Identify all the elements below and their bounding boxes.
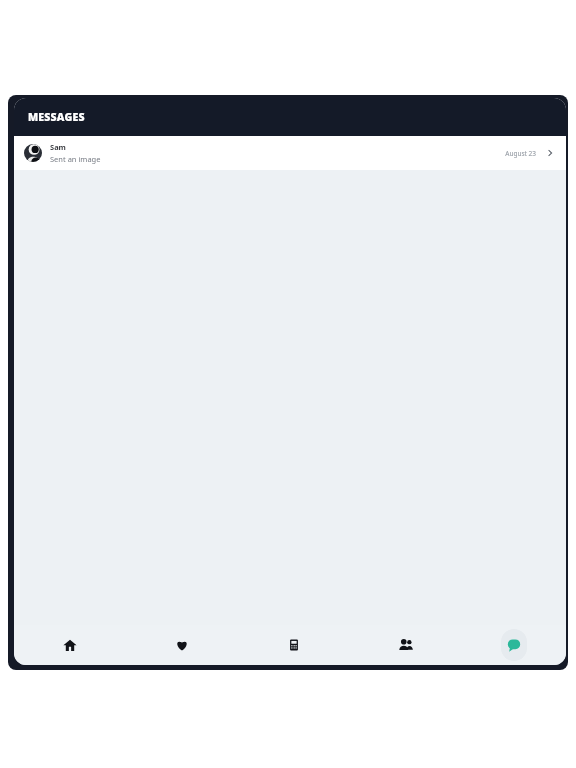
button[interactable]: Open conversation [544,147,556,159]
staticText: MESSAGES [28,110,85,124]
staticText: August 23 [505,149,536,158]
button[interactable]: Home [14,625,126,665]
button[interactable]: Calculator [238,625,350,665]
staticText: Sam [50,142,66,152]
button[interactable]: Friends [350,625,462,665]
button[interactable]: Sam [14,136,566,170]
staticText: Sent an image [50,154,101,164]
button[interactable]: Messages [462,625,566,665]
button[interactable]: Favorites [126,625,238,665]
